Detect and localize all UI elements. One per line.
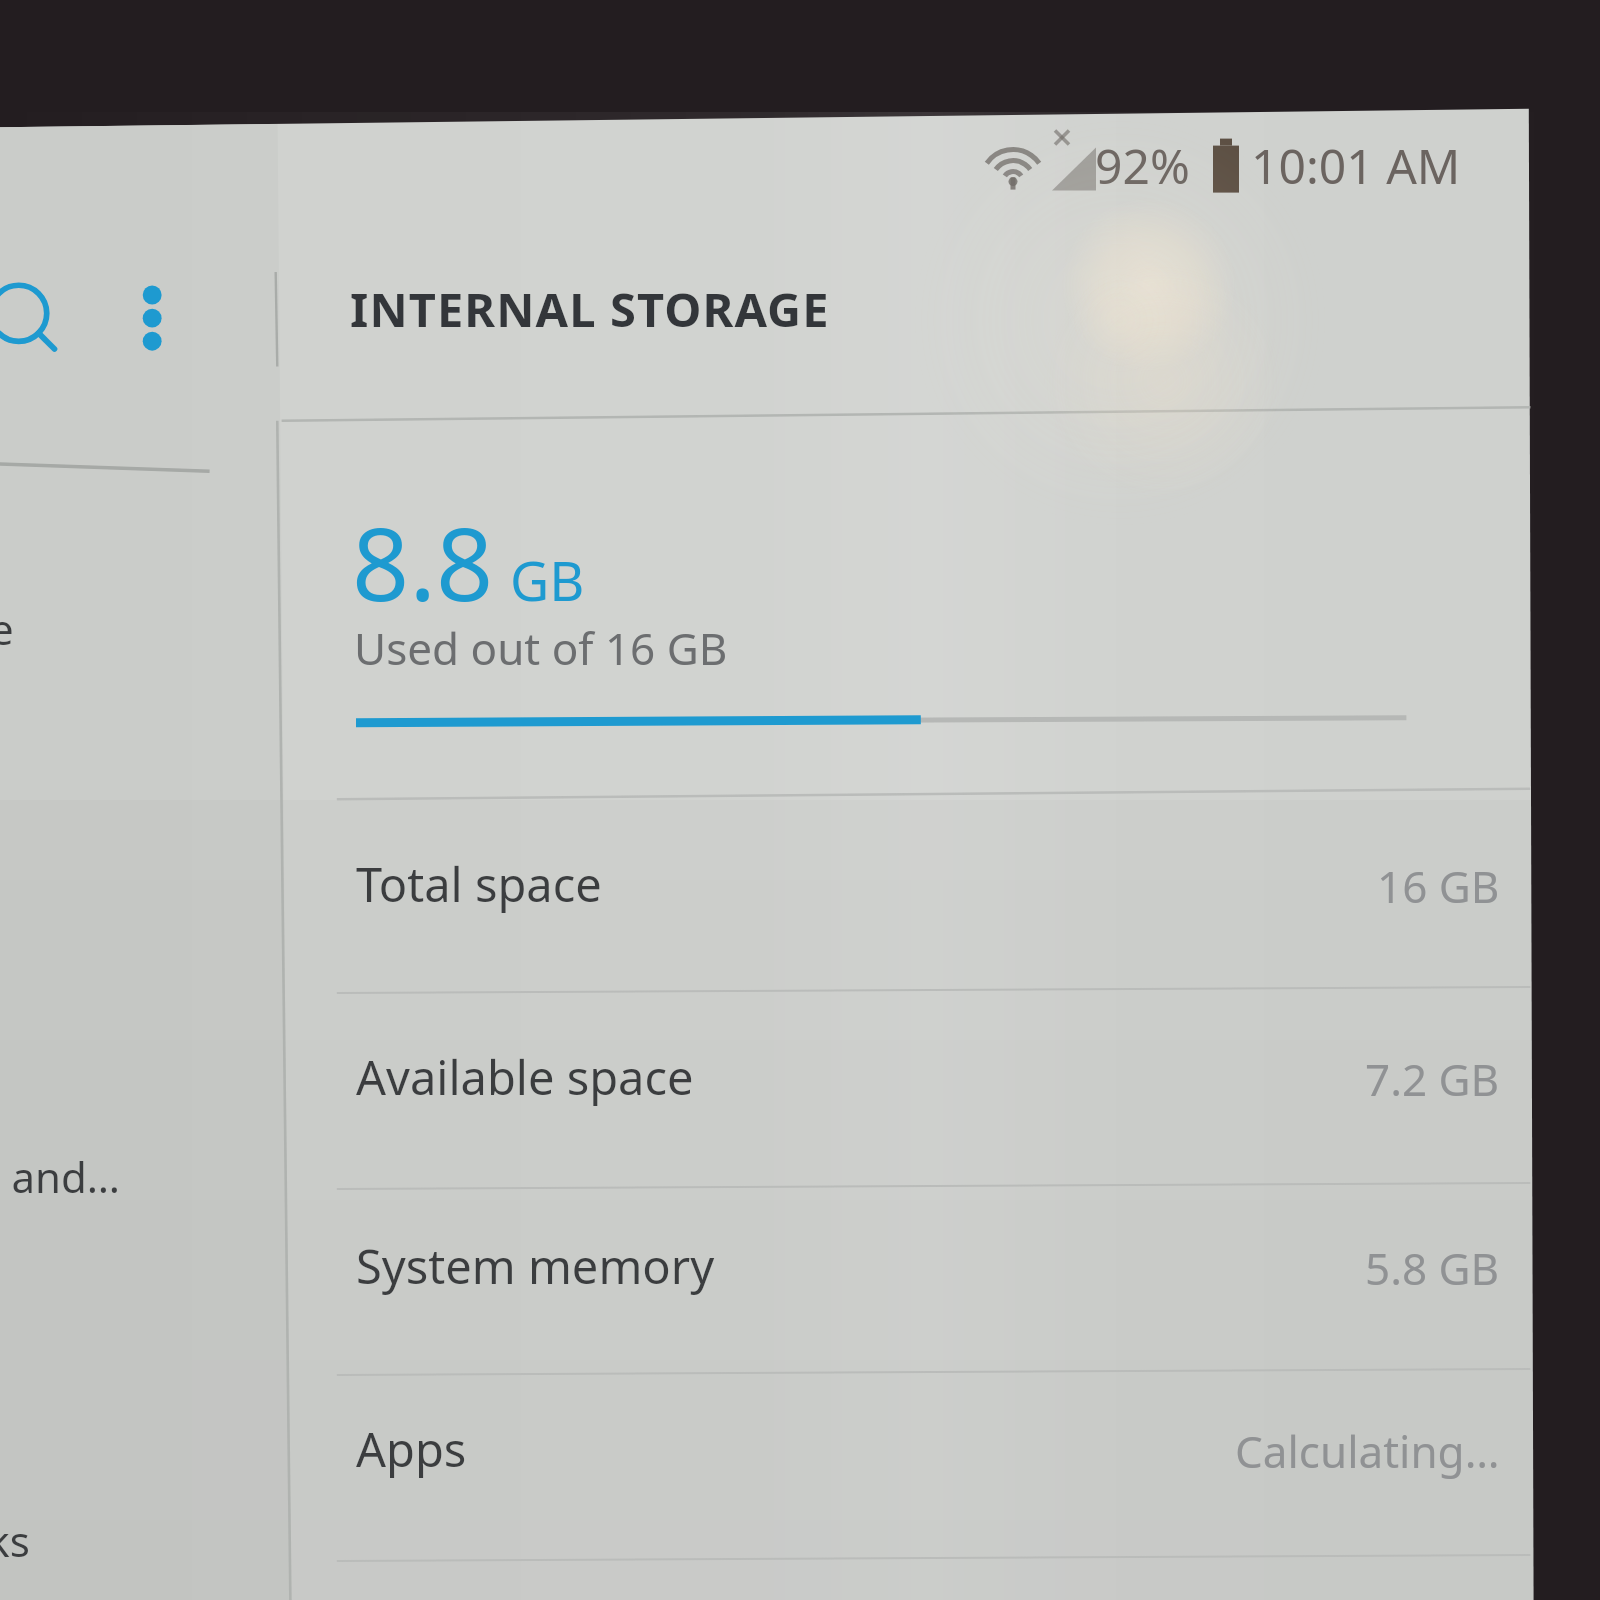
- button[interactable]: rks: [0, 1512, 200, 1569]
- button[interactable]: e: [0, 600, 220, 657]
- staticText: ot and…: [0, 1148, 121, 1205]
- button[interactable]: More options: [112, 262, 194, 382]
- button[interactable]: Apps: [290, 1395, 1530, 1558]
- staticText: 8.8: [352, 494, 494, 630]
- staticText: rks: [0, 1512, 30, 1569]
- staticText: Apps: [356, 1417, 467, 1481]
- staticText: 7.2 GB: [1365, 1049, 1500, 1109]
- staticText: Used out of 16 GB: [354, 618, 728, 678]
- staticText: Available space: [356, 1045, 694, 1109]
- staticText: 5.8 GB: [1365, 1238, 1500, 1298]
- staticText: Total space: [356, 852, 602, 916]
- staticText: GB: [510, 543, 585, 617]
- staticText: 16 GB: [1377, 856, 1500, 916]
- staticText: Calculating…: [1235, 1421, 1500, 1481]
- button[interactable]: Total space: [290, 830, 1530, 990]
- button[interactable]: Available space: [290, 1023, 1530, 1186]
- button[interactable]: Search: [0, 266, 110, 376]
- button[interactable]: INTERNAL STORAGE: [350, 277, 830, 341]
- staticText: e: [0, 600, 14, 657]
- button[interactable]: ot and…: [0, 1148, 220, 1205]
- staticText: 10:01 AM: [1251, 133, 1461, 198]
- staticText: INTERNAL STORAGE: [350, 277, 830, 341]
- button[interactable]: System memory: [290, 1212, 1530, 1372]
- staticText: System memory: [356, 1234, 715, 1298]
- staticText: 92%: [1095, 133, 1190, 198]
